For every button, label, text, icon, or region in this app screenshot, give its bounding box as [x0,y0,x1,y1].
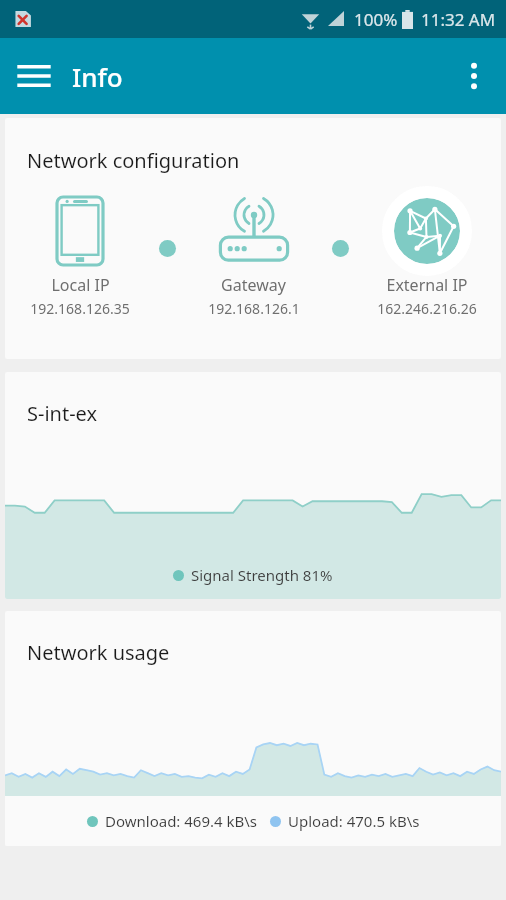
staticText: S-int-ex [27,400,98,427]
button[interactable]: S-int-ex [5,372,501,599]
staticText: 11:32 AM [421,8,496,31]
button[interactable]: Network configuration [5,118,501,359]
staticText: 100% [354,8,398,31]
button[interactable]: Gateway [179,196,328,318]
button[interactable]: Network usage [5,611,501,846]
staticText: Signal Strength 81% [191,565,333,585]
staticText: 192.168.126.1 [208,299,300,318]
button[interactable]: External IP [352,196,501,318]
button[interactable]: Local IP [5,196,155,318]
staticText: Network configuration [27,147,240,174]
staticText: Network usage [27,639,170,666]
staticText: Local IP [51,274,110,296]
staticText: Gateway [221,274,286,296]
staticText: 162.246.216.26 [377,299,477,318]
button[interactable]: More options [450,52,498,100]
staticText: Info [72,59,123,94]
staticText: 192.168.126.35 [30,299,130,318]
staticText: External IP [386,274,468,296]
button[interactable]: Open navigation drawer [10,52,58,100]
staticText: Upload: 470.5 kB\s [288,811,420,831]
staticText: Download: 469.4 kB\s [105,811,258,831]
